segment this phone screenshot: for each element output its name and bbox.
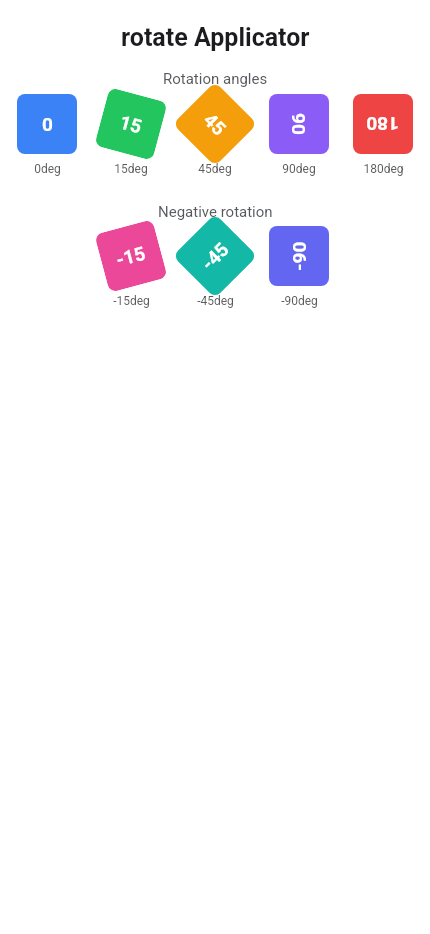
staticText: -90deg xyxy=(281,294,318,308)
button[interactable]: Rotate 0deg xyxy=(5,94,89,176)
staticText: 0 xyxy=(42,113,53,135)
staticText: Negative rotation xyxy=(158,203,273,221)
staticText: 15 xyxy=(117,110,144,137)
staticText: rotate Applicator xyxy=(121,23,310,52)
button[interactable]: Rotate -90deg xyxy=(257,226,341,308)
button[interactable]: Rotate 180deg xyxy=(341,94,425,176)
staticText: -15deg xyxy=(113,294,150,308)
button[interactable]: Rotate 90deg xyxy=(257,94,341,176)
staticText: -45 xyxy=(197,238,233,274)
staticText: 180 xyxy=(366,113,399,135)
staticText: 90deg xyxy=(282,162,316,176)
staticText: -90 xyxy=(288,241,310,271)
staticText: 45 xyxy=(199,108,230,139)
staticText: 90 xyxy=(288,113,310,135)
staticText: 45deg xyxy=(198,162,232,176)
staticText: -15 xyxy=(114,241,148,270)
button[interactable]: Rotate 15deg xyxy=(89,94,173,176)
staticText: 180deg xyxy=(363,162,404,176)
staticText: Rotation angles xyxy=(163,70,268,88)
staticText: 15deg xyxy=(114,162,148,176)
staticText: 0deg xyxy=(34,162,61,176)
staticText: -45deg xyxy=(197,294,234,308)
button[interactable]: Rotate -45deg xyxy=(173,226,257,308)
button[interactable]: Rotate 45deg xyxy=(173,94,257,176)
button[interactable]: Rotate -15deg xyxy=(89,226,173,308)
